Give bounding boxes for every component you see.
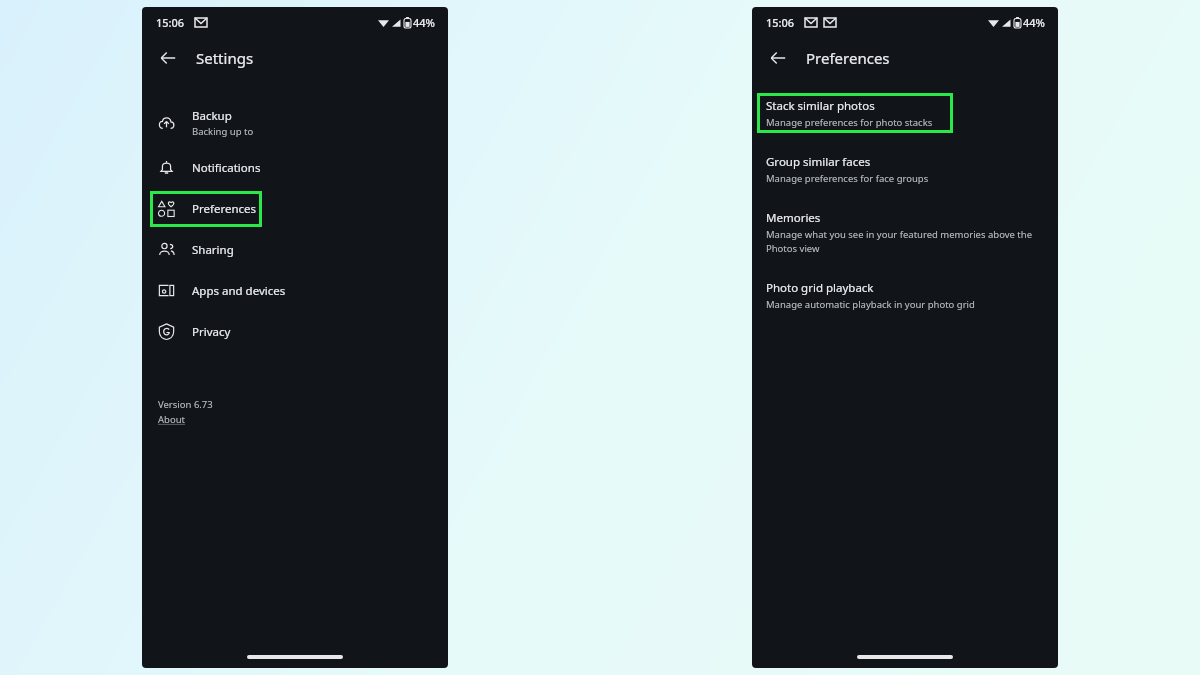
staticText: Privacy bbox=[192, 324, 231, 340]
staticText: Photos view bbox=[766, 242, 820, 255]
button[interactable]: Backup bbox=[142, 99, 448, 147]
button[interactable]: Stack similar photos bbox=[752, 93, 1058, 149]
staticText: Stack similar photos bbox=[766, 98, 875, 114]
staticText: 15:06 bbox=[766, 15, 795, 30]
staticText: Manage preferences for face groups bbox=[766, 172, 929, 185]
staticText: 15:06 bbox=[156, 15, 185, 30]
button[interactable]: Sharing bbox=[142, 229, 448, 270]
staticText: Manage what you see in your featured mem… bbox=[766, 228, 1033, 241]
staticText: 44% bbox=[1023, 15, 1045, 30]
staticText: Sharing bbox=[192, 242, 234, 258]
staticText: About bbox=[158, 413, 185, 426]
staticText: Notifications bbox=[192, 160, 261, 176]
button[interactable]: Photo grid playback bbox=[752, 275, 1058, 331]
button[interactable]: Apps and devices bbox=[142, 270, 448, 311]
staticText: Backup bbox=[192, 108, 232, 124]
staticText: Preferences bbox=[192, 201, 257, 217]
staticText: Apps and devices bbox=[192, 283, 286, 299]
button[interactable]: Back bbox=[762, 42, 794, 74]
button[interactable]: Notifications bbox=[142, 147, 448, 188]
staticText: 44% bbox=[413, 15, 435, 30]
staticText: Group similar faces bbox=[766, 154, 871, 170]
staticText: Manage preferences for photo stacks bbox=[766, 116, 933, 129]
staticText: Version 6.73 bbox=[158, 398, 213, 411]
staticText: Settings bbox=[196, 48, 254, 68]
staticText: Manage automatic playback in your photo … bbox=[766, 298, 975, 311]
button[interactable]: Group similar faces bbox=[752, 149, 1058, 205]
button[interactable]: Privacy bbox=[142, 311, 448, 352]
staticText: Backing up to bbox=[192, 125, 254, 138]
button[interactable]: Memories bbox=[752, 205, 1058, 275]
staticText: Photo grid playback bbox=[766, 280, 874, 296]
button[interactable]: Preferences bbox=[142, 188, 448, 229]
button[interactable]: About bbox=[158, 413, 185, 426]
staticText: Memories bbox=[766, 210, 821, 226]
staticText: Preferences bbox=[806, 48, 890, 68]
button[interactable]: Back bbox=[152, 42, 184, 74]
